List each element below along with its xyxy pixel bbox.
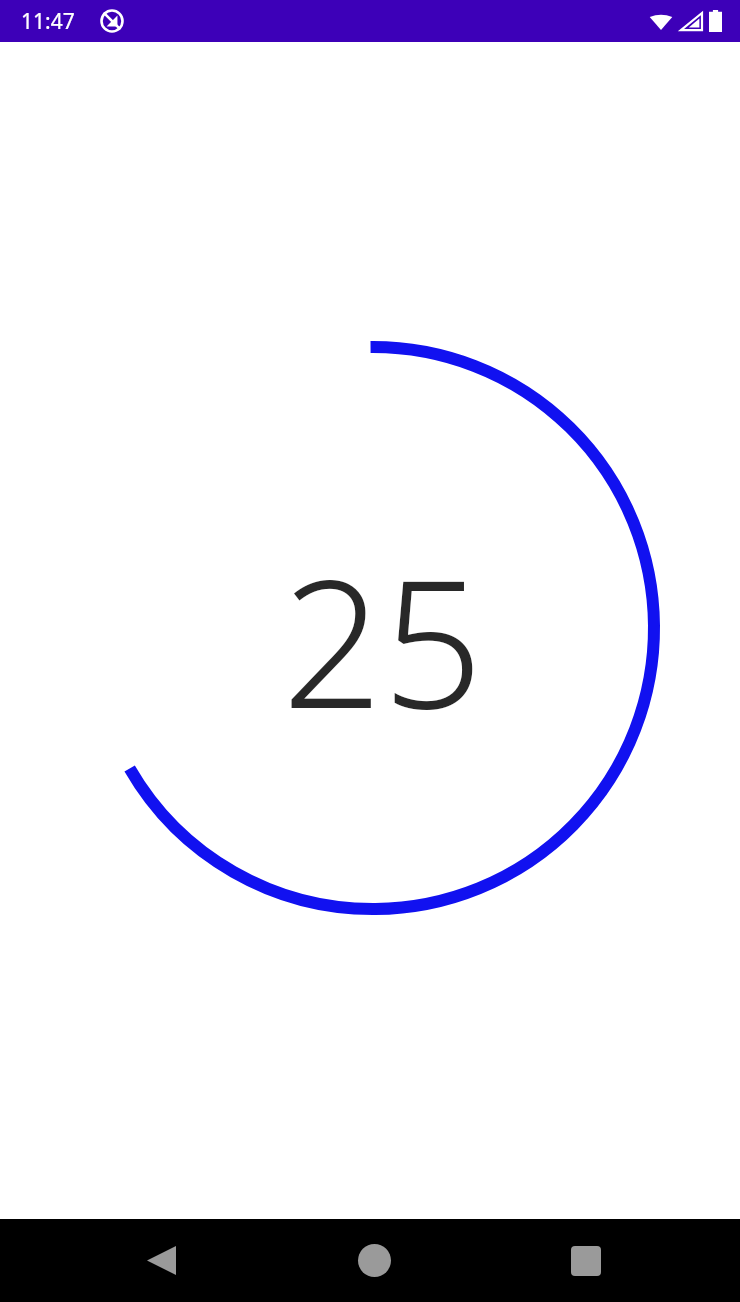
staticText: 11:47 [21, 7, 75, 36]
button[interactable]: Back [111, 1219, 211, 1302]
staticText: 25 [282, 520, 483, 760]
button[interactable]: Recent apps [536, 1219, 636, 1302]
button[interactable]: Home [324, 1219, 424, 1302]
